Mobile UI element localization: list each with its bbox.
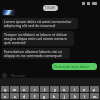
button[interactable]: i (70, 86, 79, 92)
button[interactable]: r (30, 86, 39, 92)
staticText: s (14, 94, 16, 99)
staticText: i (74, 87, 75, 92)
staticText: y (54, 87, 56, 92)
button[interactable]: t (40, 86, 49, 92)
button[interactable]: u (60, 86, 69, 92)
staticText: h (53, 94, 56, 99)
button[interactable]: Emoji (2, 73, 7, 78)
staticText: f (34, 94, 36, 99)
staticText: d (23, 94, 26, 99)
button[interactable]: Tempor incididunt ut labore et dolore ma… (2, 31, 74, 46)
staticText: l (84, 94, 85, 99)
button[interactable]: w (10, 86, 19, 92)
staticText: a (4, 94, 7, 99)
staticText: u (63, 87, 66, 92)
staticText: o (83, 87, 86, 92)
button[interactable]: p (90, 86, 99, 92)
button[interactable] (2, 9, 15, 16)
button[interactable]: f (30, 93, 39, 99)
staticText: TODAY (45, 6, 56, 10)
staticText: k (74, 94, 76, 99)
button[interactable]: m (90, 93, 99, 99)
button[interactable]: s (10, 93, 19, 99)
staticText: j (64, 94, 65, 99)
button[interactable]: Exercitation ullamco laboris nisi ut ali… (2, 48, 70, 59)
staticText: r (34, 87, 36, 92)
button[interactable]: Lorem ipsum dolor sit amet consectetur a… (2, 18, 78, 29)
staticText: Duis aute irure dolor (54, 64, 89, 69)
button[interactable]: Duis aute irure dolor (52, 63, 97, 70)
button[interactable]: e (20, 86, 29, 92)
button[interactable]: k (70, 93, 79, 99)
button[interactable]: y (50, 86, 59, 92)
staticText: q (4, 87, 7, 92)
button[interactable]: o (80, 86, 89, 92)
button[interactable]: g (40, 93, 49, 99)
button[interactable]: j (60, 93, 69, 99)
button[interactable]: a (1, 93, 9, 99)
staticText: Tempor incididunt ut labore et dolore ma… (4, 32, 72, 45)
staticText: g (43, 94, 46, 99)
button[interactable]: h (50, 93, 59, 99)
staticText: m (93, 94, 97, 99)
button[interactable]: TODAY (43, 5, 58, 11)
staticText: Lorem ipsum dolor sit amet consectetur a… (4, 19, 76, 28)
button[interactable]: l (80, 93, 89, 99)
staticText: e (23, 87, 26, 92)
button[interactable]: d (20, 93, 29, 99)
staticText: Message (11, 73, 26, 78)
staticText: p (93, 87, 96, 92)
staticText: Exercitation ullamco laboris nisi ut ali… (4, 49, 68, 58)
staticText: w (13, 87, 16, 92)
button[interactable]: q (1, 86, 9, 92)
staticText: t (44, 87, 46, 92)
